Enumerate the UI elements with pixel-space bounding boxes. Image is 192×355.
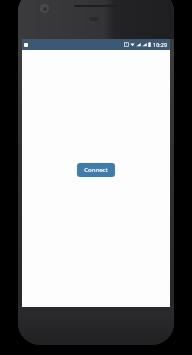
staticText: 10:29 [153, 41, 168, 48]
button[interactable]: Connect [77, 163, 115, 177]
staticText: Connect [84, 166, 108, 174]
